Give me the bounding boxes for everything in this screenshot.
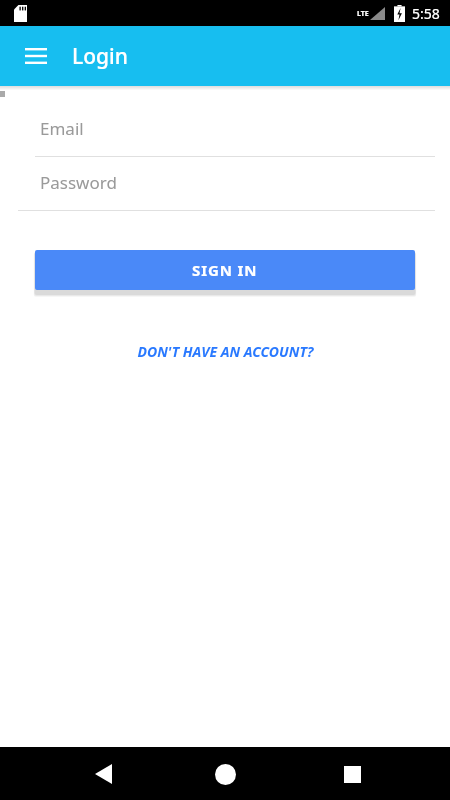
staticText: 5:58 [412, 4, 440, 23]
button[interactable]: Email [35, 117, 435, 157]
button[interactable]: DON'T HAVE AN ACCOUNT? [127, 338, 324, 365]
staticText: LTE [357, 9, 369, 19]
button[interactable]: Password [18, 171, 435, 211]
staticText: Password [40, 171, 117, 194]
button[interactable]: Home [201, 750, 249, 798]
button[interactable]: Back [79, 750, 127, 798]
staticText: DON'T HAVE AN ACCOUNT? [137, 342, 314, 361]
button[interactable]: Recent apps [328, 750, 376, 798]
staticText: Login [72, 42, 128, 71]
button[interactable]: SIGN IN [35, 250, 415, 290]
staticText: Email [40, 117, 84, 140]
staticText: SIGN IN [192, 260, 258, 280]
button[interactable]: Open navigation menu [12, 32, 60, 80]
